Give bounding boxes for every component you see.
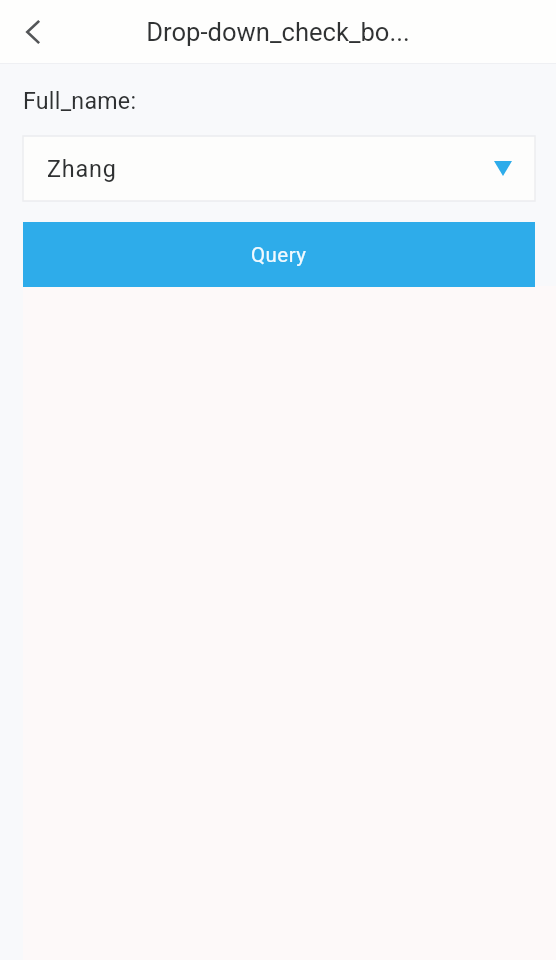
button[interactable]: Query [23, 222, 535, 287]
staticText: Zhang [47, 155, 117, 182]
button[interactable]: Back [0, 0, 58, 63]
staticText: Query [251, 243, 307, 267]
staticText: Full_name: [23, 87, 137, 114]
staticText: Drop-down_check_bo... [146, 17, 410, 47]
button[interactable]: Zhang [23, 136, 535, 201]
